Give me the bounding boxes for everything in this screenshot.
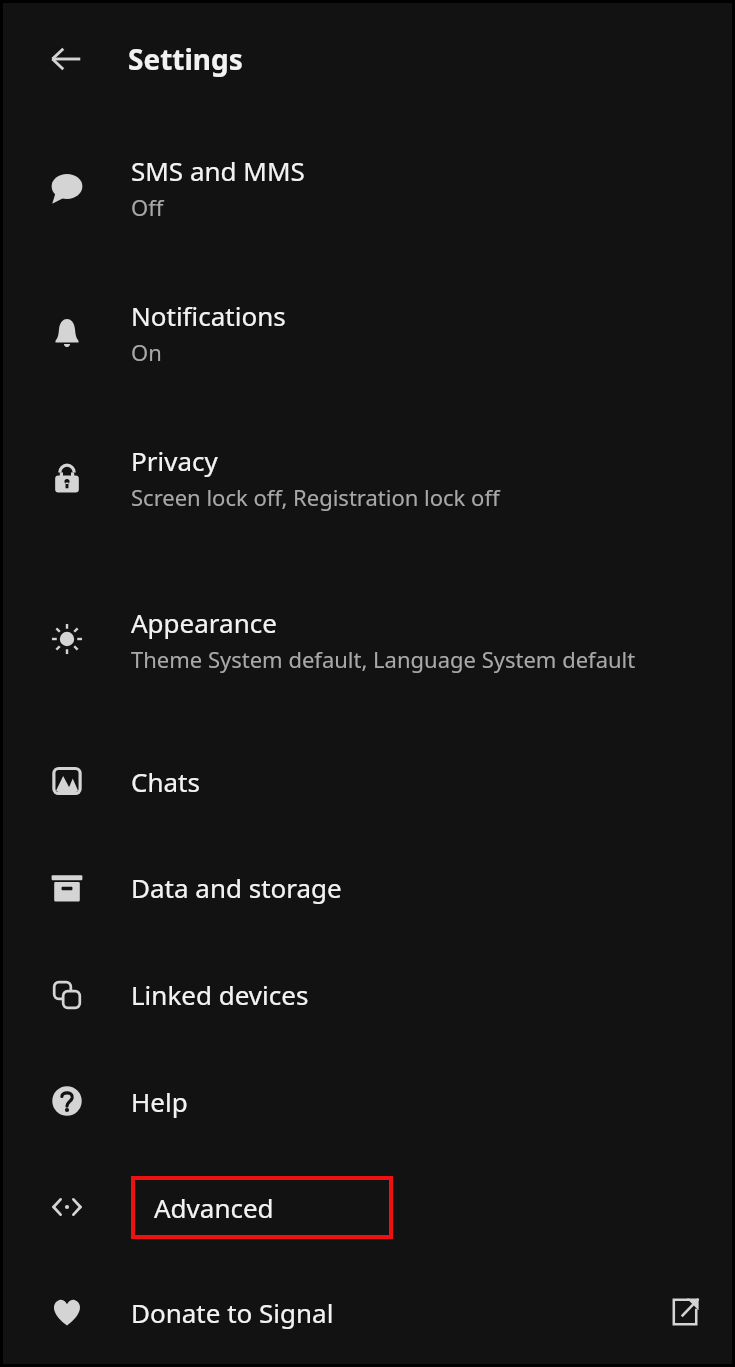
staticText: Chats bbox=[131, 764, 200, 799]
staticText: Data and storage bbox=[131, 870, 342, 905]
staticText: Advanced bbox=[154, 1190, 274, 1225]
staticText: Help bbox=[131, 1084, 188, 1119]
button[interactable]: Data and storage bbox=[3, 834, 732, 941]
staticText: Notifications bbox=[131, 298, 286, 333]
staticText: Donate to Signal bbox=[131, 1295, 334, 1330]
other: Opens in browser bbox=[636, 1295, 732, 1329]
button[interactable]: Chats bbox=[3, 728, 732, 834]
staticText: Settings bbox=[128, 40, 243, 78]
button[interactable]: Privacy bbox=[3, 405, 732, 550]
button[interactable]: SMS and MMS bbox=[3, 115, 732, 260]
button[interactable]: Notifications bbox=[3, 260, 732, 405]
button[interactable]: Donate to Signal bbox=[3, 1260, 732, 1364]
button[interactable]: Help bbox=[3, 1048, 732, 1154]
button[interactable]: Advanced bbox=[3, 1154, 732, 1260]
staticText: SMS and MMS bbox=[131, 153, 305, 188]
button[interactable]: Appearance bbox=[3, 550, 732, 728]
staticText: Screen lock off, Registration lock off bbox=[131, 482, 651, 512]
staticText: Appearance bbox=[131, 605, 277, 640]
button[interactable]: Linked devices bbox=[3, 941, 732, 1048]
staticText: Off bbox=[131, 192, 651, 222]
staticText: Privacy bbox=[131, 443, 218, 478]
staticText: Theme System default, Language System de… bbox=[131, 644, 651, 674]
staticText: Linked devices bbox=[131, 977, 309, 1012]
button[interactable]: Navigate up bbox=[3, 3, 128, 115]
staticText: On bbox=[131, 337, 651, 367]
